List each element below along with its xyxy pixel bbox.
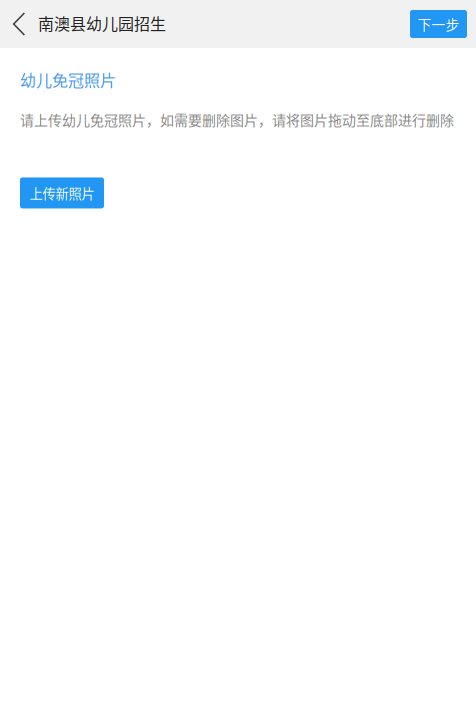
staticText: 请上传幼儿免冠照片，如需要删除图片，请将图片拖动至底部进行删除 <box>20 109 454 129</box>
button[interactable]: Back <box>0 0 38 48</box>
staticText: 南澳县幼儿园招生 <box>38 11 166 35</box>
staticText: 下一步 <box>417 14 459 34</box>
staticText: 幼儿免冠照片 <box>20 68 116 91</box>
staticText: 上传新照片 <box>29 183 94 203</box>
button[interactable]: 下一步 <box>410 10 467 38</box>
button[interactable]: 上传新照片 <box>20 177 104 208</box>
